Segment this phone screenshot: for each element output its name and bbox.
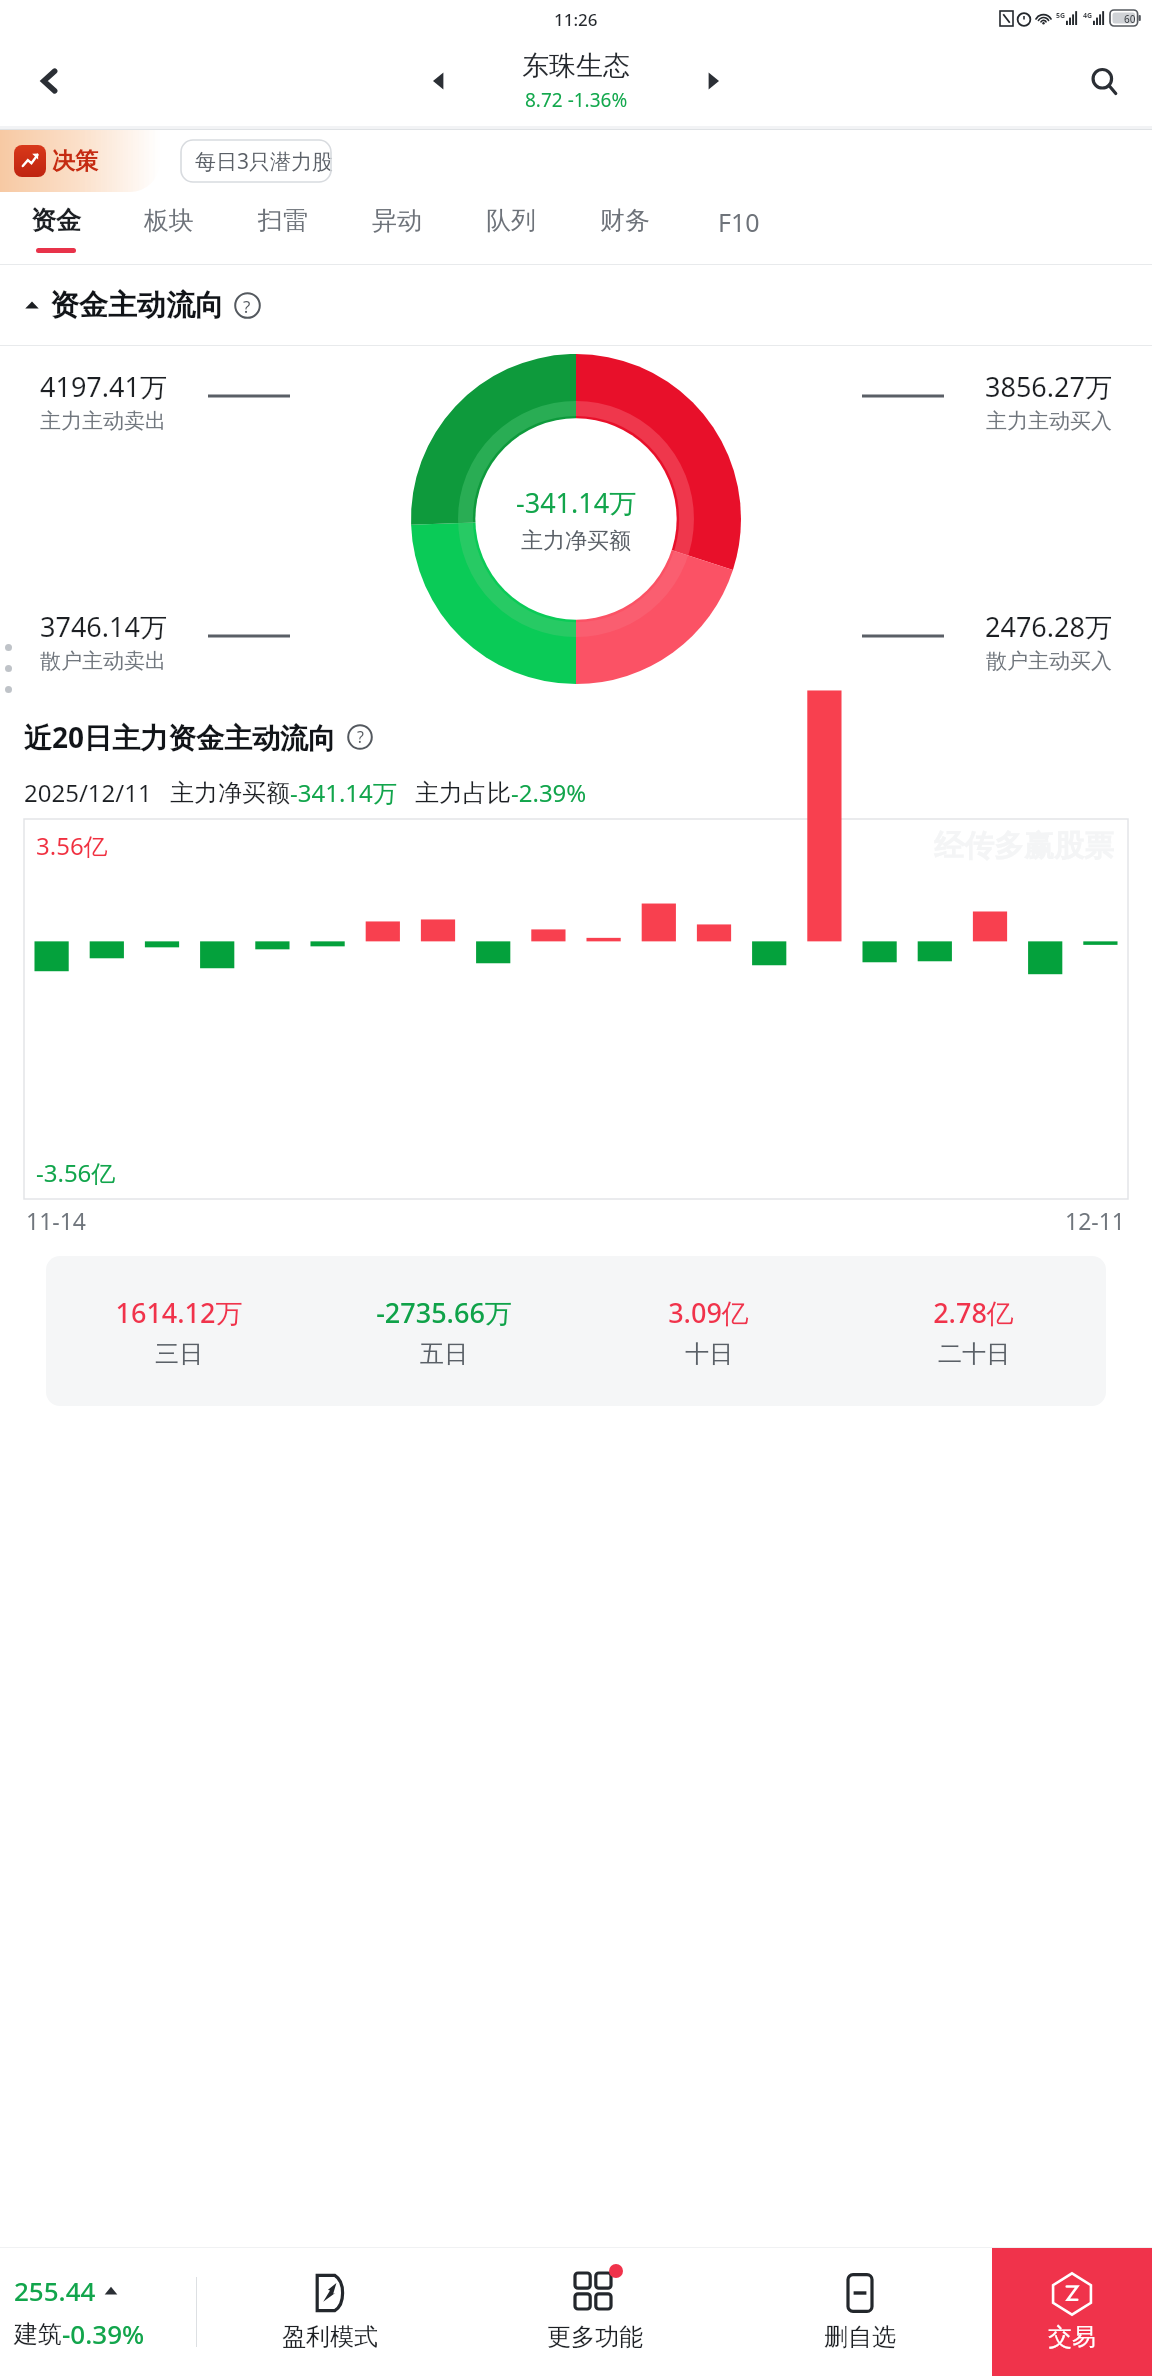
button[interactable]: Back (22, 53, 78, 109)
staticText: 8.72 -1.36% (525, 87, 628, 113)
staticText: 12-11 (1065, 1205, 1126, 1236)
staticText: 60 (1124, 12, 1136, 26)
staticText: 三日 (155, 1339, 203, 1369)
button[interactable]: 财务 (568, 192, 682, 264)
staticText: 建筑 (14, 2319, 62, 2349)
button[interactable]: 东珠生态 (466, 49, 686, 113)
staticText: 决策 (52, 147, 98, 176)
button[interactable]: 近20日主力资金主动流向 (0, 706, 1152, 768)
staticText: 主力净买额 (521, 527, 631, 555)
staticText: 11-14 (26, 1205, 87, 1236)
staticText: -341.14万 (290, 776, 397, 809)
staticText: 散户主动卖出 (40, 648, 166, 674)
button[interactable]: 每日3只潜力股 (181, 140, 348, 182)
button[interactable]: 1614.12万 (46, 1256, 311, 1406)
staticText: 4197.41万 (40, 368, 167, 405)
staticText: 资金主动流向 (50, 287, 224, 324)
staticText: 主力净买额 (170, 778, 290, 808)
staticText: 近20日主力资金主动流向 (24, 718, 337, 756)
staticText: 东珠生态 (522, 49, 630, 83)
staticText: 主力主动卖出 (40, 408, 166, 434)
staticText: ? (243, 295, 251, 318)
button[interactable]: 扫雷 (226, 192, 340, 264)
button[interactable]: 队列 (454, 192, 568, 264)
button[interactable]: F10 (682, 192, 796, 264)
staticText: 扫雷 (258, 205, 308, 236)
staticText: 十日 (685, 1339, 733, 1369)
button[interactable]: Next stock (686, 54, 740, 108)
staticText: 3.56亿 (36, 829, 108, 862)
staticText: 财务 (600, 205, 650, 236)
staticText: 板块 (144, 205, 194, 236)
staticText: 11:26 (554, 8, 598, 31)
staticText: ? (357, 726, 364, 748)
staticText: 3.09亿 (668, 1294, 749, 1331)
staticText: 交易 (1048, 2322, 1096, 2352)
staticText: -3.56亿 (36, 1156, 116, 1189)
staticText: 主力主动买入 (986, 408, 1112, 434)
staticText: 删自选 (824, 2322, 896, 2352)
staticText: 3746.14万 (40, 608, 167, 645)
button[interactable]: Previous stock (412, 54, 466, 108)
staticText: 255.44 (14, 2273, 96, 2308)
staticText: 3856.27万 (985, 368, 1112, 405)
button[interactable]: 决策 (0, 130, 160, 192)
button[interactable]: 删自选 (727, 2248, 992, 2376)
button[interactable]: 交易 (992, 2248, 1152, 2376)
staticText: 2.78亿 (933, 1294, 1014, 1331)
staticText: 盈利模式 (282, 2322, 378, 2352)
staticText: 4G (1083, 11, 1093, 21)
button[interactable]: 3.09亿 (576, 1256, 841, 1406)
staticText: 2476.28万 (985, 608, 1112, 645)
button[interactable]: 资金 (0, 192, 112, 264)
staticText: -2735.66万 (376, 1294, 512, 1331)
staticText: 2025/12/11 (24, 776, 152, 809)
button[interactable]: 资金主动流向 (0, 265, 1152, 345)
staticText: 资金 (31, 205, 81, 236)
button[interactable]: 板块 (112, 192, 226, 264)
staticText: -0.39% (62, 2316, 145, 2351)
staticText: 散户主动买入 (986, 648, 1112, 674)
button[interactable]: 更多功能 (462, 2248, 727, 2376)
staticText: 五日 (420, 1339, 468, 1369)
staticText: -2.39% (511, 776, 587, 809)
staticText: 队列 (486, 205, 536, 236)
staticText: 更多功能 (547, 2322, 643, 2352)
staticText: 1614.12万 (115, 1294, 243, 1331)
button[interactable]: 255.44 (0, 2248, 196, 2376)
staticText: 每日3只潜力股 (195, 147, 334, 176)
staticText: F10 (718, 205, 760, 239)
staticText: 二十日 (938, 1339, 1010, 1369)
button[interactable]: -2735.66万 (311, 1256, 576, 1406)
staticText: 经传多赢股票 (934, 827, 1114, 865)
button[interactable]: Search (1076, 53, 1132, 109)
staticText: -341.14万 (516, 484, 637, 521)
staticText: 异动 (372, 205, 422, 236)
button[interactable]: 2.78亿 (841, 1256, 1106, 1406)
button[interactable]: 异动 (340, 192, 454, 264)
staticText: 主力占比 (415, 778, 511, 808)
staticText: 5G (1056, 11, 1066, 21)
button[interactable]: 盈利模式 (197, 2248, 462, 2376)
